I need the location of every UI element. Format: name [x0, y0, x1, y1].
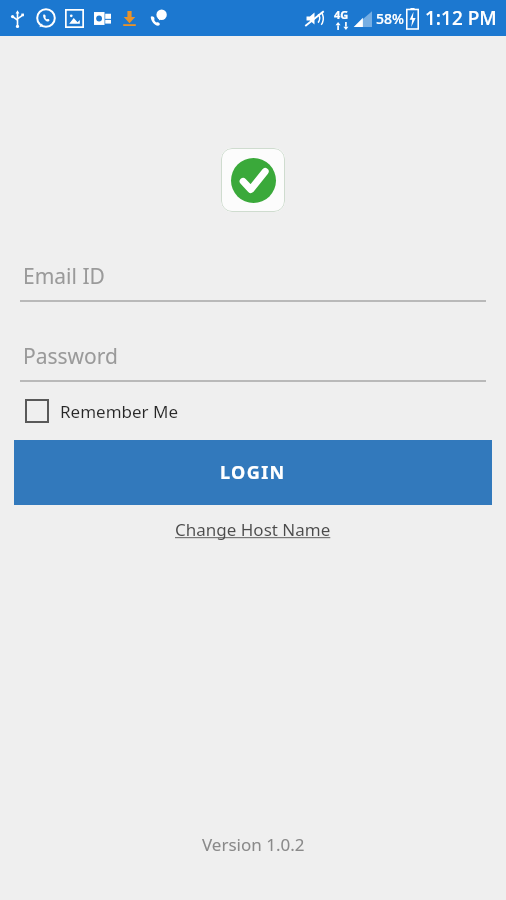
staticText: 1:12 PM [425, 5, 497, 31]
staticText: Password [23, 342, 118, 371]
staticText: Remember Me [60, 400, 179, 423]
button[interactable]: Remember Me [25, 399, 179, 423]
staticText: Change Host Name [175, 518, 331, 541]
button[interactable]: Change Host Name [167, 516, 339, 543]
staticText: Email ID [23, 262, 105, 291]
button[interactable]: Email ID [20, 262, 486, 302]
button[interactable]: Password [20, 342, 486, 382]
staticText: Version 1.0.2 [202, 833, 305, 856]
button[interactable]: LOGIN [14, 440, 492, 505]
other: App logo [221, 148, 285, 212]
staticText: 4G [334, 7, 349, 22]
staticText: 58% [376, 9, 404, 28]
staticText: LOGIN [220, 460, 286, 485]
